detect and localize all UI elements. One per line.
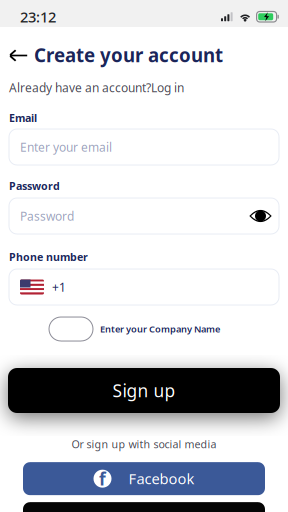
button[interactable]: Sign up xyxy=(8,368,280,413)
button[interactable]: Back xyxy=(8,42,29,67)
staticText: Create your account xyxy=(34,43,223,67)
staticText: Sign up xyxy=(112,379,175,402)
staticText: f xyxy=(99,467,106,490)
staticText: 23:12 xyxy=(20,7,56,26)
staticText: Log in xyxy=(151,79,184,95)
button[interactable]: Show password xyxy=(249,209,268,223)
staticText: Enter your Company Name xyxy=(100,323,220,335)
button[interactable]: Log in xyxy=(151,79,184,95)
staticText: Enter your email xyxy=(20,139,112,155)
button[interactable]: Enter your Company Name xyxy=(0,317,288,341)
staticText: +1 xyxy=(52,279,66,295)
staticText: Email xyxy=(9,111,37,125)
staticText: Phone number xyxy=(9,250,88,264)
staticText: Or sign up with social media xyxy=(71,437,216,451)
staticText: Password xyxy=(9,179,60,193)
staticText: Password xyxy=(20,208,74,224)
staticText: Already have an account? xyxy=(9,79,151,95)
staticText: Facebook xyxy=(128,469,194,488)
button[interactable] xyxy=(23,502,265,512)
button[interactable]: f xyxy=(23,462,265,495)
